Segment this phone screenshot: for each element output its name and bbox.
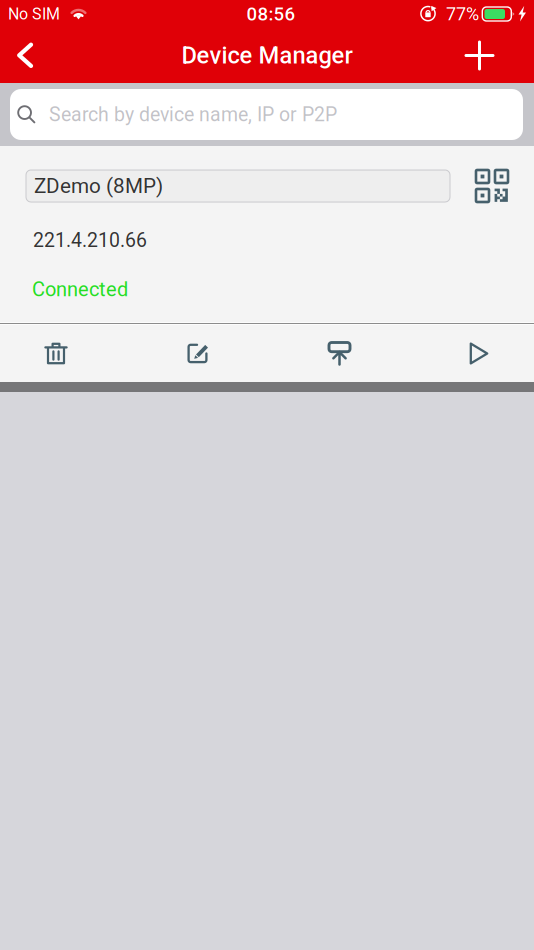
staticText: Search by device name, IP or P2P (49, 103, 337, 126)
button[interactable]: Upgrade (329, 325, 350, 382)
staticText: No SIM (8, 5, 60, 23)
button[interactable]: Scan QR code (463, 163, 521, 209)
button[interactable]: Delete (44, 325, 68, 382)
staticText: Device Manager (181, 42, 352, 69)
staticText: 77% (446, 3, 479, 25)
staticText: 08:56 (246, 3, 295, 25)
staticText: Connected (32, 278, 128, 301)
button[interactable]: Play (469, 325, 489, 382)
staticText: 221.4.210.66 (33, 229, 147, 252)
button[interactable]: Edit (187, 325, 210, 382)
staticText: ZDemo (8MP) (34, 174, 163, 198)
button[interactable]: Add device (452, 28, 507, 83)
button[interactable]: Back (1, 28, 49, 83)
